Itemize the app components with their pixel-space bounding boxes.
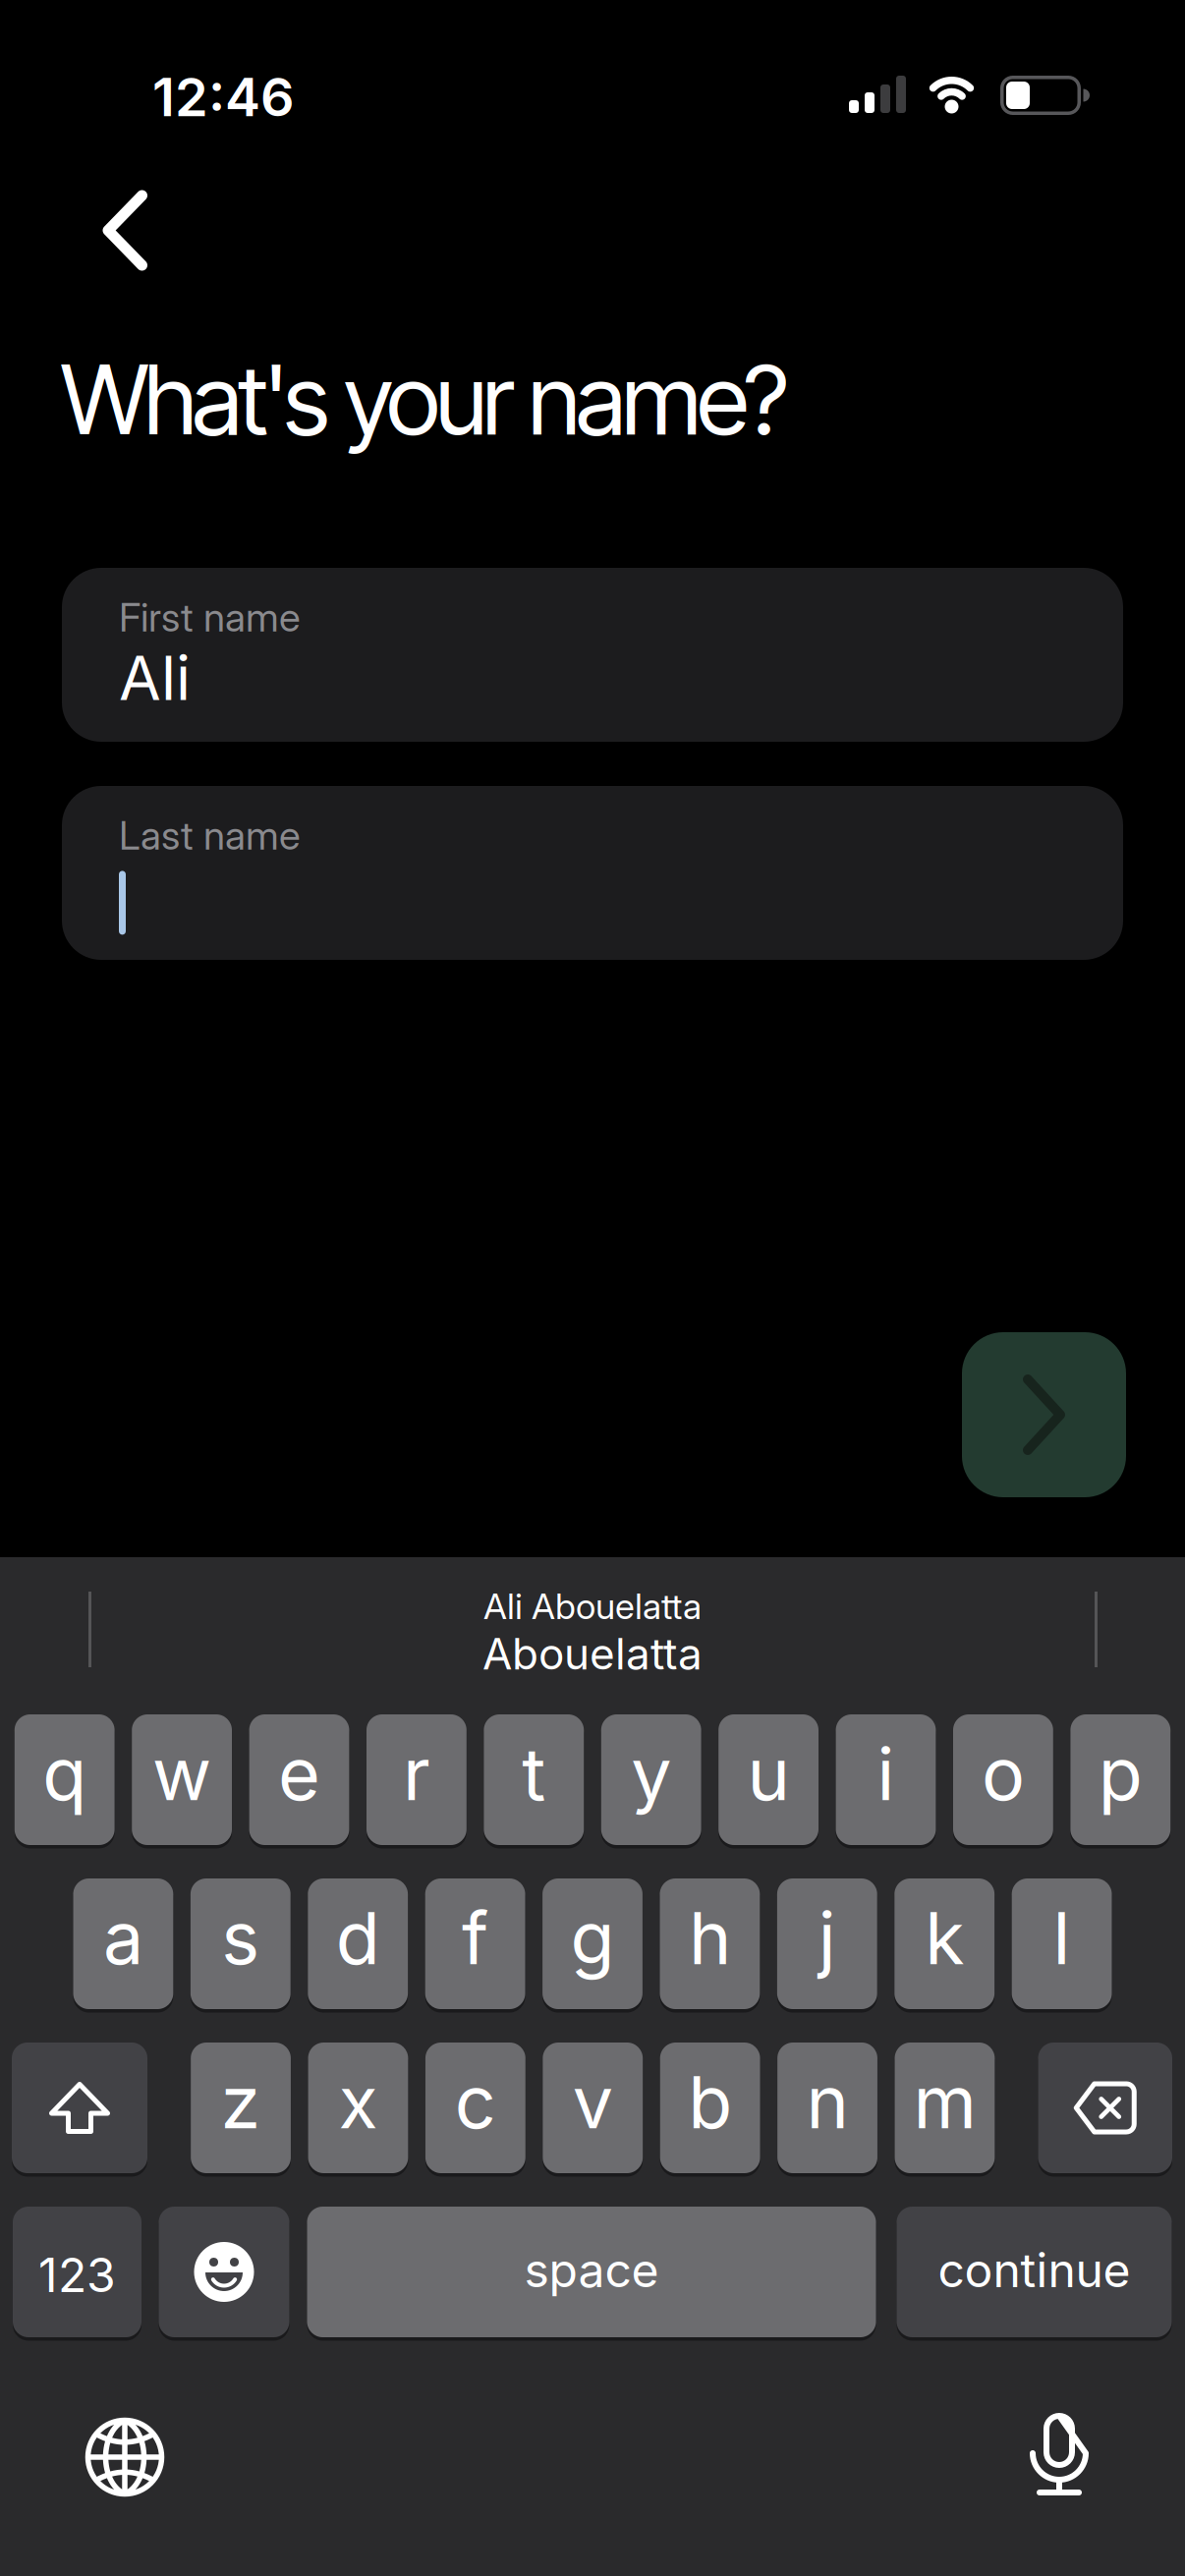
- button[interactable]: v: [543, 2041, 643, 2175]
- button[interactable]: d: [308, 1876, 408, 2011]
- button[interactable]: a: [73, 1876, 173, 2011]
- button[interactable]: Delete: [1038, 2041, 1172, 2175]
- button[interactable]: Emoji: [159, 2205, 289, 2339]
- button[interactable]: n: [777, 2041, 877, 2175]
- staticText: k: [925, 1894, 964, 1982]
- staticText: y: [631, 1730, 671, 1817]
- staticText: i: [877, 1730, 895, 1817]
- staticText: Last name: [119, 812, 301, 859]
- button[interactable]: g: [542, 1876, 643, 2011]
- staticText: t: [522, 1730, 546, 1817]
- button[interactable]: Next keyboard: [85, 2418, 164, 2496]
- button[interactable]: q: [15, 1712, 115, 1847]
- staticText: h: [689, 1894, 731, 1982]
- button[interactable]: space: [307, 2205, 876, 2339]
- staticText: r: [403, 1730, 430, 1817]
- button[interactable]: Back: [103, 190, 148, 271]
- staticText: u: [747, 1730, 790, 1817]
- button[interactable]: r: [367, 1712, 467, 1847]
- staticText: m: [913, 2058, 976, 2146]
- staticText: Ali Abouelatta: [483, 1585, 702, 1628]
- staticText: c: [455, 2058, 496, 2146]
- button[interactable]: j: [777, 1876, 877, 2011]
- button[interactable]: e: [249, 1712, 349, 1847]
- staticText: b: [688, 2058, 732, 2146]
- staticText: continue: [938, 2241, 1130, 2299]
- button[interactable]: 123: [13, 2205, 141, 2339]
- staticText: l: [1053, 1894, 1071, 1982]
- staticText: 123: [38, 2246, 116, 2303]
- button[interactable]: k: [894, 1876, 994, 2011]
- button[interactable]: l: [1012, 1876, 1112, 2011]
- button[interactable]: o: [953, 1712, 1053, 1847]
- button[interactable]: s: [191, 1876, 291, 2011]
- button[interactable]: Shift: [12, 2041, 147, 2175]
- button[interactable]: Continue: [962, 1332, 1126, 1497]
- staticText: z: [221, 2058, 261, 2146]
- staticText: e: [278, 1730, 320, 1817]
- button[interactable]: continue: [897, 2205, 1172, 2339]
- button[interactable]: m: [895, 2041, 995, 2175]
- staticText: o: [982, 1730, 1025, 1817]
- button[interactable]: i: [836, 1712, 936, 1847]
- staticText: p: [1098, 1730, 1143, 1817]
- button[interactable]: y: [601, 1712, 701, 1847]
- staticText: j: [818, 1894, 836, 1982]
- staticText: n: [806, 2058, 849, 2146]
- button[interactable]: c: [425, 2041, 525, 2175]
- staticText: v: [573, 2058, 613, 2146]
- staticText: g: [570, 1894, 615, 1982]
- staticText: w: [152, 1730, 211, 1817]
- staticText: q: [42, 1730, 87, 1817]
- button[interactable]: b: [660, 2041, 760, 2175]
- button[interactable]: x: [308, 2041, 408, 2175]
- staticText: d: [336, 1894, 380, 1982]
- staticText: space: [524, 2241, 659, 2299]
- button[interactable]: Dictation: [1030, 2413, 1089, 2496]
- button[interactable]: u: [718, 1712, 818, 1847]
- button[interactable]: f: [425, 1876, 525, 2011]
- button[interactable]: h: [660, 1876, 760, 2011]
- staticText: f: [462, 1894, 488, 1982]
- button[interactable]: w: [132, 1712, 232, 1847]
- button[interactable]: t: [484, 1712, 584, 1847]
- staticText: a: [103, 1894, 143, 1982]
- staticText: First name: [119, 593, 301, 641]
- staticText: s: [221, 1894, 260, 1982]
- button[interactable]: z: [191, 2041, 291, 2175]
- staticText: 12:46: [152, 65, 295, 129]
- staticText: x: [339, 2058, 378, 2146]
- button[interactable]: p: [1070, 1712, 1170, 1847]
- staticText: Abouelatta: [482, 1628, 703, 1680]
- staticText: Ali: [119, 641, 191, 715]
- staticText: What's your name?: [61, 341, 788, 457]
